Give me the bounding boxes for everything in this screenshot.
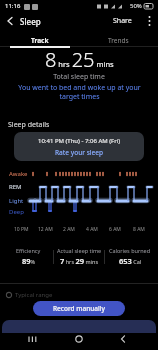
staticText: 7 hrs 29 mins [60,256,99,266]
button[interactable]: Record manually [33,301,125,316]
staticText: 8 hrs 25 mins [45,46,114,73]
button[interactable]: Share [108,12,136,30]
staticText: Record manually [53,304,106,313]
staticText: Actual sleep time [57,247,102,254]
button[interactable]: Calories burned [105,247,155,269]
staticText: Trends [108,36,129,45]
staticText: 12 AM [38,226,53,233]
staticText: Sleep details [8,120,50,130]
staticText: Light [9,197,24,205]
staticText: Share [113,16,132,26]
button[interactable]: Track [0,33,79,48]
staticText: You went to bed and woke up at your targ… [18,83,141,101]
staticText: 50% [130,2,142,10]
staticText: Sleep [20,16,41,27]
staticText: REM [9,183,22,191]
staticText: Calories burned [109,247,151,254]
staticText: Rate your sleep [55,148,104,157]
staticText: 653 Cal [119,256,142,266]
staticText: Deep [9,208,24,216]
button[interactable]: Actual sleep time [54,247,104,269]
button[interactable]: Trends [79,33,158,48]
staticText: 2 AM [63,226,75,233]
staticText: 8 AM [133,226,145,233]
staticText: Efficiency [16,247,41,254]
staticText: 89% [22,256,36,266]
button[interactable] [2,13,18,29]
button[interactable] [142,12,156,30]
staticText: Typical range [15,291,53,299]
button[interactable]: 10:41 PM (Thu) - 7:06 AM (Fri) [14,132,144,161]
staticText: 6 AM [109,226,121,233]
staticText: 10 PM [14,226,29,233]
staticText: Total sleep time [53,72,105,82]
staticText: Track [31,36,49,45]
staticText: 4 AM [86,226,98,233]
staticText: 11:16 [5,2,21,10]
staticText: 10:41 PM (Thu) - 7:06 AM (Fri) [38,137,120,145]
button[interactable]: Efficiency [4,247,53,269]
staticText: Awake [9,170,28,178]
